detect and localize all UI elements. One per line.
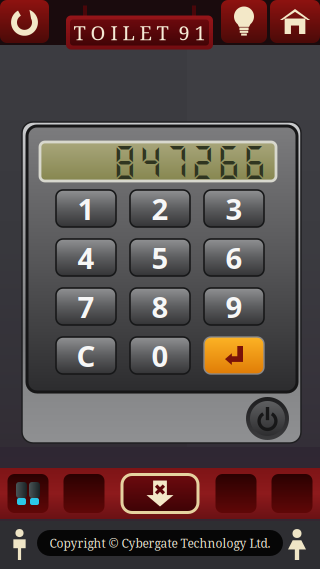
button[interactable]: 5 xyxy=(130,239,190,276)
button[interactable]: Empty item slot xyxy=(208,468,264,519)
button[interactable]: 9 xyxy=(204,288,264,325)
staticText: 8 xyxy=(151,287,168,326)
button[interactable]: Home xyxy=(270,0,320,43)
button[interactable]: 6 xyxy=(204,239,264,276)
staticText: 9 xyxy=(225,287,242,326)
staticText: Copyright © Cybergate Technology Ltd. xyxy=(49,535,270,551)
button[interactable]: 8 xyxy=(130,288,190,325)
staticText: 0 xyxy=(151,336,168,375)
button[interactable]: Hint xyxy=(221,0,267,43)
staticText: 5 xyxy=(151,238,168,277)
staticText: C xyxy=(76,336,95,375)
staticText: T O I L E T 9 1 xyxy=(73,19,205,46)
button[interactable]: 0 xyxy=(130,337,190,374)
staticText: 4 xyxy=(77,238,94,277)
button[interactable]: 2 xyxy=(130,190,190,227)
button[interactable]: 4 xyxy=(56,239,116,276)
button[interactable]: Empty item slot xyxy=(56,468,112,519)
staticText: 2 xyxy=(151,189,168,228)
button[interactable]: Restart xyxy=(0,0,49,43)
staticText: 6 xyxy=(225,238,242,277)
button[interactable]: 1 xyxy=(56,190,116,227)
button[interactable]: 7 xyxy=(56,288,116,325)
staticText: 3 xyxy=(225,189,242,228)
button[interactable]: Binoculars xyxy=(0,468,56,519)
button[interactable]: C xyxy=(56,337,116,374)
staticText: 1 xyxy=(77,189,94,228)
staticText: 847266 xyxy=(112,141,268,182)
button[interactable]: Enter xyxy=(204,337,264,374)
staticText: 7 xyxy=(77,287,94,326)
button[interactable]: Close inventory xyxy=(112,468,208,519)
button[interactable]: Empty item slot xyxy=(264,468,320,519)
button[interactable]: 3 xyxy=(204,190,264,227)
